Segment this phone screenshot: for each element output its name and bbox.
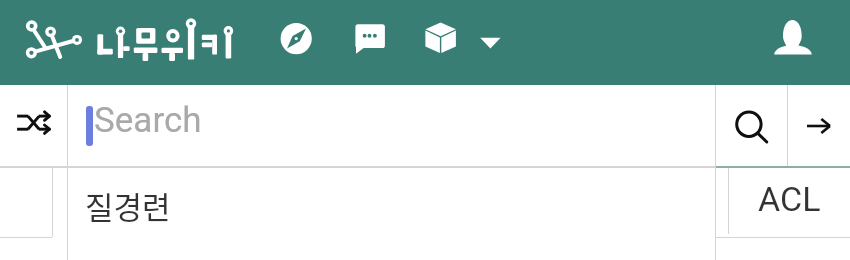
button[interactable]: Account: [770, 14, 818, 58]
button[interactable]: Go: [788, 85, 850, 166]
button[interactable]: Search: [716, 85, 787, 166]
button[interactable]: ACL: [729, 168, 850, 237]
button[interactable]: Random page: [0, 85, 67, 166]
button[interactable]: 질경련: [68, 168, 715, 237]
button[interactable]: Discuss: [352, 22, 386, 56]
staticText: Search: [94, 100, 202, 141]
button[interactable]: Tools menu: [421, 18, 506, 60]
staticText: ACL: [758, 179, 821, 219]
button[interactable]: 나무위키 home: [0, 0, 250, 85]
staticText: 질경련: [85, 183, 171, 228]
button[interactable]: Explore: [280, 22, 313, 55]
button[interactable]: Search: [68, 85, 715, 166]
